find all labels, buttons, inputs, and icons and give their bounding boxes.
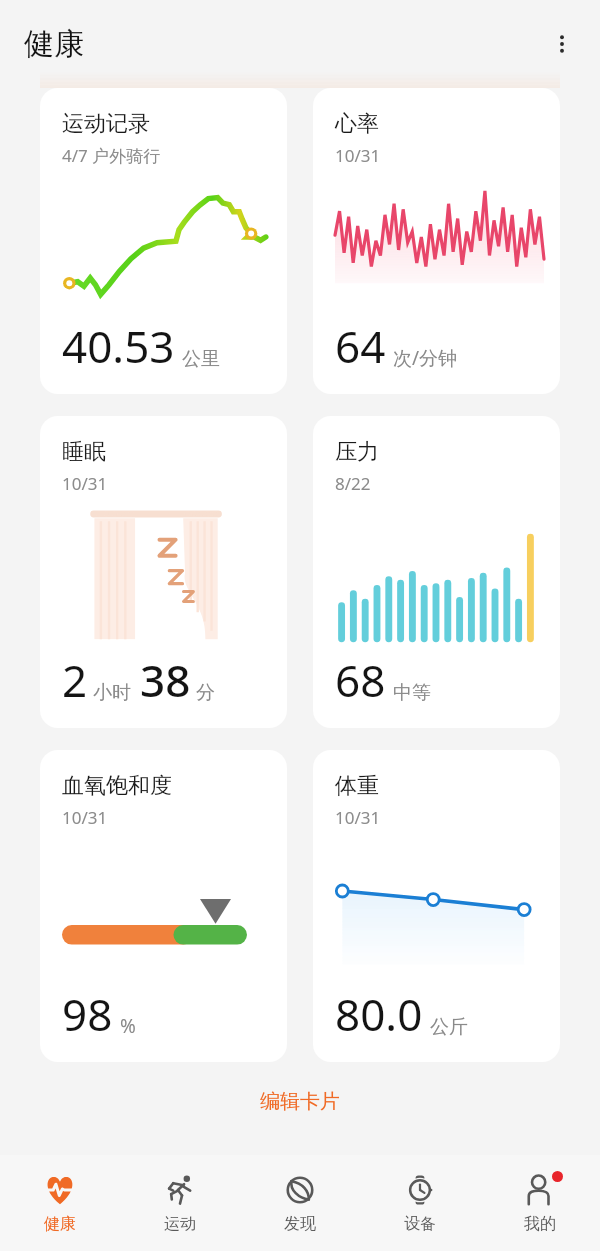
staticText: 公里 — [182, 347, 220, 371]
button[interactable]: 运动记录 — [40, 88, 287, 394]
other: 我的 — [523, 1173, 557, 1207]
staticText: 心率 — [335, 110, 379, 138]
staticText: 我的 — [524, 1214, 556, 1234]
staticText: 64 — [335, 316, 386, 376]
staticText: % — [120, 1013, 136, 1039]
staticText: 体重 — [335, 772, 379, 800]
staticText: 8/22 — [335, 472, 371, 495]
staticText: 健康 — [24, 25, 84, 63]
staticText: 分 — [196, 681, 215, 705]
other: 健康 — [43, 1173, 77, 1207]
staticText: 设备 — [404, 1214, 436, 1234]
staticText: 10/31 — [62, 472, 108, 495]
button[interactable]: 运动 — [120, 1155, 240, 1251]
staticText: 公斤 — [430, 1015, 468, 1039]
staticText: 2 — [62, 650, 88, 710]
staticText: 4/7 户外骑行 — [62, 144, 161, 167]
button[interactable]: More options — [536, 18, 588, 70]
button[interactable]: 发现 — [240, 1155, 360, 1251]
staticText: 运动 — [164, 1214, 196, 1234]
button[interactable]: 血氧饱和度 — [40, 750, 287, 1062]
other: 运动 — [163, 1173, 197, 1207]
staticText: 40.53 — [62, 316, 175, 376]
staticText: 健康 — [44, 1214, 76, 1234]
staticText: 10/31 — [335, 144, 381, 167]
other: 发现 — [283, 1173, 317, 1207]
staticText: 中等 — [393, 681, 431, 705]
button[interactable]: 编辑卡片 — [40, 1080, 560, 1122]
staticText: 运动记录 — [62, 110, 150, 138]
staticText: 10/31 — [335, 806, 381, 829]
button[interactable]: 体重 — [313, 750, 560, 1062]
staticText: 睡眠 — [62, 438, 106, 466]
button[interactable]: 睡眠 — [40, 416, 287, 728]
button[interactable]: 健康 — [0, 1155, 120, 1251]
staticText: 血氧饱和度 — [62, 772, 172, 800]
staticText: 98 — [62, 984, 113, 1044]
staticText: 编辑卡片 — [260, 1089, 340, 1114]
staticText: 38 — [140, 650, 191, 710]
staticText: 发现 — [284, 1214, 316, 1234]
staticText: 压力 — [335, 438, 379, 466]
staticText: 10/31 — [62, 806, 108, 829]
button[interactable]: 设备 — [360, 1155, 480, 1251]
staticText: 次/分钟 — [393, 345, 458, 371]
other: 设备 — [403, 1173, 437, 1207]
staticText: 80.0 — [335, 984, 423, 1044]
button[interactable]: 压力 — [313, 416, 560, 728]
staticText: 小时 — [93, 681, 131, 705]
button[interactable]: 我的 — [480, 1155, 600, 1251]
button[interactable]: 心率 — [313, 88, 560, 394]
staticText: 68 — [335, 650, 386, 710]
